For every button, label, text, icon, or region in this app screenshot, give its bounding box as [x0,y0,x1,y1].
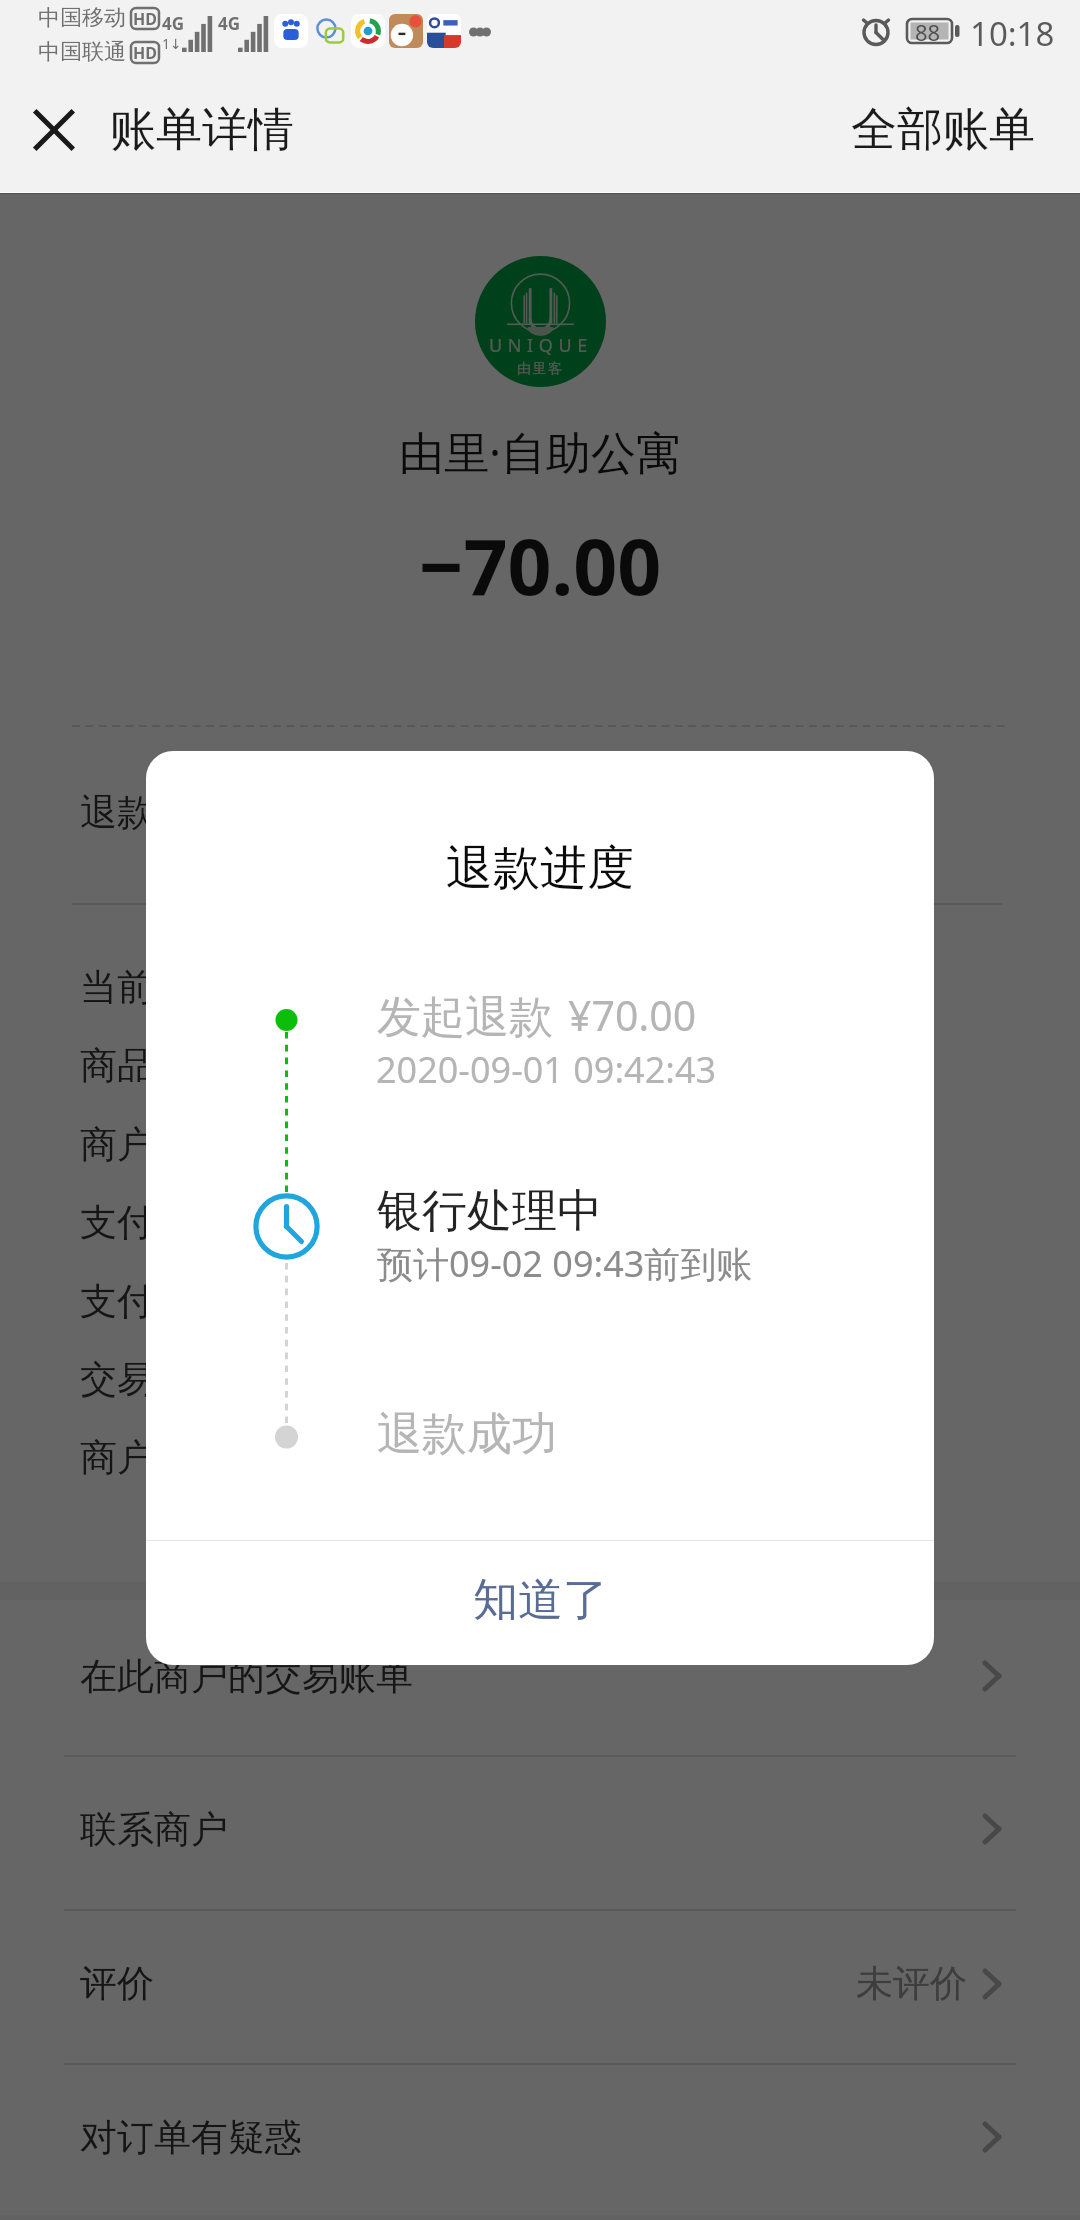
button[interactable]: 知道了 [146,1541,934,1665]
staticText: 预计09-02 09:43前到账 [377,1239,753,1288]
staticText: 10:18 [970,11,1055,56]
button[interactable]: 联系商户 [0,1752,1080,1906]
staticText: 当前状态 [80,964,228,1011]
staticText: 未评价 [856,1960,967,2007]
staticText: 账单详情 [110,101,294,159]
staticText: 商户全称 [80,1121,228,1168]
staticText: 支付时间 [80,1278,228,1325]
staticText: HD [133,42,157,63]
staticText: 商户单号 [80,1434,228,1481]
staticText: 由里客 [517,360,564,378]
button[interactable]: Close [0,76,108,184]
staticText: 4G [162,12,185,35]
staticText: 中国联通 [38,38,126,66]
staticText: 退款 [80,789,154,836]
staticText: 联系商户 [80,1806,228,1853]
staticText: 退款中 [360,964,471,1011]
staticText: ¥70.00 [568,987,697,1043]
staticText: 退款进度 [446,839,634,898]
button[interactable]: 退款 [0,772,1080,852]
staticText: 发起退款 [377,990,553,1045]
staticText: 88 [915,17,941,45]
staticText: −70.00 [0,513,1080,618]
staticText: UNIQUE [489,333,593,358]
staticText: 房费 [360,1042,434,1089]
staticText: 知道了 [473,1572,608,1629]
staticText: 1↓ [162,34,182,53]
staticText: 2020-09-01 09:42:43 [376,1045,717,1094]
staticText: 4G [218,12,241,35]
staticText: 对订单有疑惑 [80,2114,302,2161]
button[interactable]: 在此商户的交易账单 [0,1599,1080,1753]
staticText: 中国移动 [38,4,126,32]
staticText: 支付方式 [80,1199,228,1246]
staticText: 全部账单 [851,101,1035,159]
staticText: HD [133,8,157,29]
staticText: 评价 [80,1960,154,2007]
button[interactable]: 对订单有疑惑 [0,2060,1080,2214]
staticText: 08-31 20:14 [360,1277,561,1327]
staticText: 银行处理中 [377,1183,602,1240]
staticText: 招商银行(1234) [360,1197,615,1248]
staticText: 退款成功 [377,1406,557,1463]
staticText: 商品 [80,1042,154,1089]
staticText: 15988760682661 [360,1433,657,1483]
staticText: 在此商户的交易账单 [80,1653,413,1700]
staticText: 由里·自助公寓 [0,421,1080,482]
button[interactable]: 全部账单 [811,79,1080,181]
staticText: 交易单号 [80,1356,228,1403]
button[interactable]: 评价 [0,1906,1080,2060]
